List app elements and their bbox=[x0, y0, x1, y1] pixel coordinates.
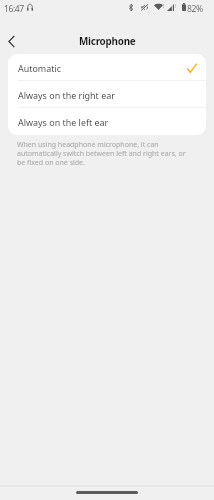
staticText: When using headphone microphone, it can … bbox=[17, 140, 191, 167]
staticText: Always on the left ear bbox=[18, 116, 109, 128]
button[interactable]: Back bbox=[2, 32, 20, 50]
button[interactable]: Automatic bbox=[8, 54, 206, 81]
staticText: Automatic bbox=[18, 62, 62, 74]
staticText: Microphone bbox=[79, 34, 136, 47]
staticText: 16:47 bbox=[4, 3, 24, 15]
staticText: Always on the right ear bbox=[18, 89, 115, 101]
staticText: 82% bbox=[187, 3, 203, 15]
button[interactable]: Always on the left ear bbox=[8, 108, 206, 135]
button[interactable]: Always on the right ear bbox=[8, 81, 206, 108]
